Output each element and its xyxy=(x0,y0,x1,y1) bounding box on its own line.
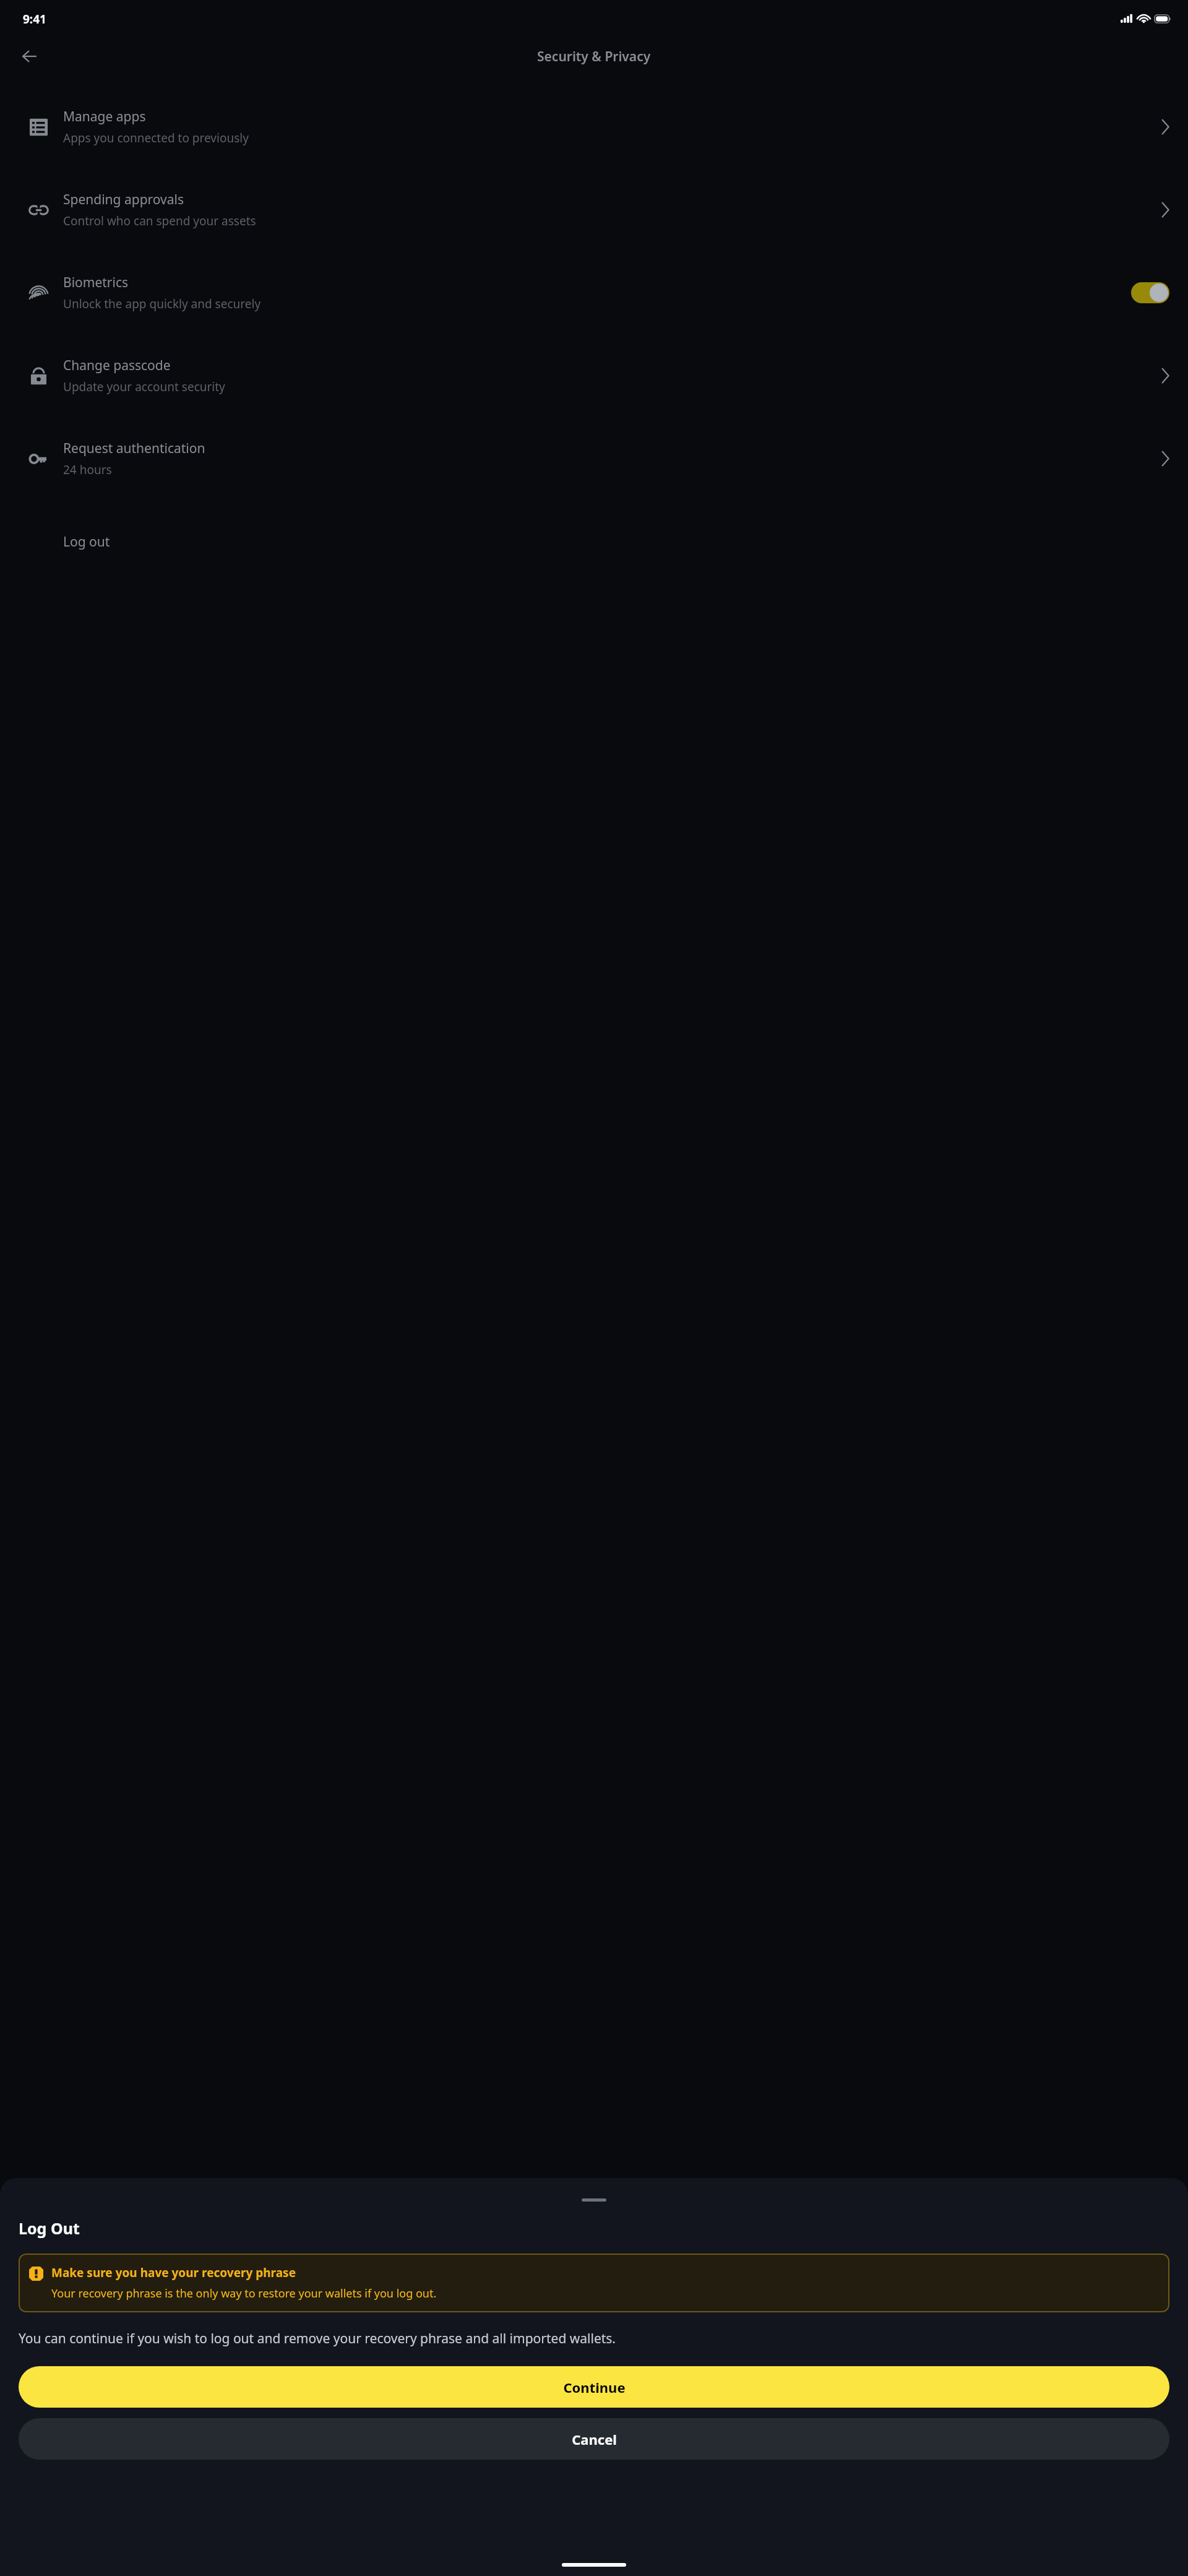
staticText: Log Out xyxy=(19,2218,80,2239)
staticText: Make sure you have your recovery phrase xyxy=(51,2265,296,2281)
staticText: Update your account security xyxy=(63,379,225,395)
staticText: Continue xyxy=(563,2378,626,2397)
button[interactable]: Change passcode xyxy=(0,334,1188,417)
staticText: Apps you connected to previously xyxy=(63,130,249,146)
staticText: Security & Privacy xyxy=(537,48,651,66)
staticText: 9:41 xyxy=(23,11,46,27)
button[interactable]: Back xyxy=(12,39,47,74)
staticText: Control who can spend your assets xyxy=(63,213,256,229)
button[interactable]: Log out xyxy=(0,500,1188,583)
button[interactable]: Manage apps xyxy=(0,85,1188,168)
staticText: You can continue if you wish to log out … xyxy=(19,2330,616,2348)
staticText: Biometrics xyxy=(63,274,129,292)
staticText: 24 hours xyxy=(63,462,112,478)
staticText: Change passcode xyxy=(63,357,171,374)
staticText: Your recovery phrase is the only way to … xyxy=(51,2286,437,2301)
staticText: Cancel xyxy=(572,2430,617,2448)
button[interactable]: Spending approvals xyxy=(0,168,1188,251)
staticText: Manage apps xyxy=(63,108,146,126)
button[interactable]: Biometrics toggle xyxy=(1131,282,1169,303)
staticText: Unlock the app quickly and securely xyxy=(63,296,261,312)
button[interactable]: Biometrics xyxy=(0,251,1188,334)
button[interactable]: Continue xyxy=(19,2366,1169,2408)
staticText: Log out xyxy=(63,533,110,551)
staticText: Spending approvals xyxy=(63,191,184,209)
button[interactable]: Cancel xyxy=(19,2418,1169,2460)
staticText: Request authentication xyxy=(63,439,205,457)
button[interactable]: Request authentication xyxy=(0,417,1188,500)
